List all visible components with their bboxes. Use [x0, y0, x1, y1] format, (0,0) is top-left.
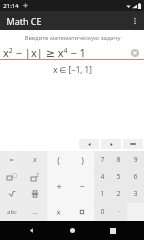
- button[interactable]: Back: [22, 221, 41, 240]
- button[interactable]: Backspace: [123, 139, 143, 149]
- staticText: 0: [100, 207, 105, 217]
- button[interactable]: abc: [0, 203, 23, 221]
- staticText: 7: [100, 155, 105, 165]
- staticText: x ∈ [−1, 1]: [53, 64, 92, 75]
- staticText: 21:14: [3, 2, 19, 10]
- button[interactable]: 9: [127, 151, 144, 168]
- button[interactable]: x: [23, 151, 47, 168]
- staticText: ×: [56, 207, 61, 218]
- staticText: 9: [133, 155, 138, 165]
- button[interactable]: 8: [110, 151, 127, 168]
- staticText: 6: [133, 172, 138, 182]
- staticText: −: [79, 180, 85, 192]
- staticText: Math CE: [6, 15, 42, 27]
- button[interactable]: Move right: [101, 139, 121, 149]
- button[interactable]: 1: [94, 185, 110, 203]
- staticText: ): [81, 154, 84, 166]
- button[interactable]: 7: [94, 151, 110, 168]
- other: Divide: [79, 209, 85, 215]
- button[interactable]: ·: [110, 203, 127, 221]
- button[interactable]: ×: [47, 203, 70, 221]
- staticText: □: [12, 172, 17, 178]
- staticText: (: [57, 154, 60, 166]
- staticText: 2: [36, 172, 39, 179]
- button[interactable]: Divide: [70, 203, 94, 221]
- staticText: 3: [133, 189, 138, 199]
- button[interactable]: Move left: [79, 139, 99, 149]
- button[interactable]: 5: [110, 168, 127, 185]
- staticText: ·: [118, 207, 120, 217]
- button[interactable]: ): [70, 151, 94, 168]
- staticText: Введите математическую задачу: [24, 34, 121, 42]
- button[interactable]: ...: [23, 203, 47, 221]
- button[interactable]: +: [47, 168, 70, 203]
- button[interactable]: 2: [110, 185, 127, 203]
- button[interactable]: [0, 185, 23, 203]
- button[interactable]: 2: [23, 168, 47, 185]
- button[interactable]: Recents: [103, 221, 122, 240]
- button[interactable]: 0: [94, 203, 110, 221]
- button[interactable]: □: [0, 168, 23, 185]
- button[interactable]: −: [70, 168, 94, 203]
- button[interactable]: Clear: [129, 47, 140, 58]
- button[interactable]: 6: [127, 168, 144, 185]
- button[interactable]: (: [47, 151, 70, 168]
- staticText: 8: [116, 155, 121, 165]
- staticText: x: [33, 155, 37, 165]
- staticText: abc: [7, 208, 17, 216]
- staticText: +: [56, 180, 62, 192]
- button[interactable]: =: [0, 151, 23, 168]
- staticText: 4: [100, 172, 105, 182]
- staticText: ...: [32, 207, 38, 217]
- staticText: x2 − |x| ≥ x4 − 1: [3, 45, 86, 59]
- staticText: =: [9, 155, 14, 165]
- button[interactable]: 4: [94, 168, 110, 185]
- button[interactable]: More options: [126, 11, 144, 30]
- staticText: 5: [116, 172, 121, 182]
- staticText: 1: [100, 189, 105, 199]
- button[interactable]: [23, 185, 47, 203]
- staticText: 2: [116, 189, 121, 199]
- button[interactable]: 3: [127, 185, 144, 203]
- button[interactable]: Home: [63, 221, 82, 240]
